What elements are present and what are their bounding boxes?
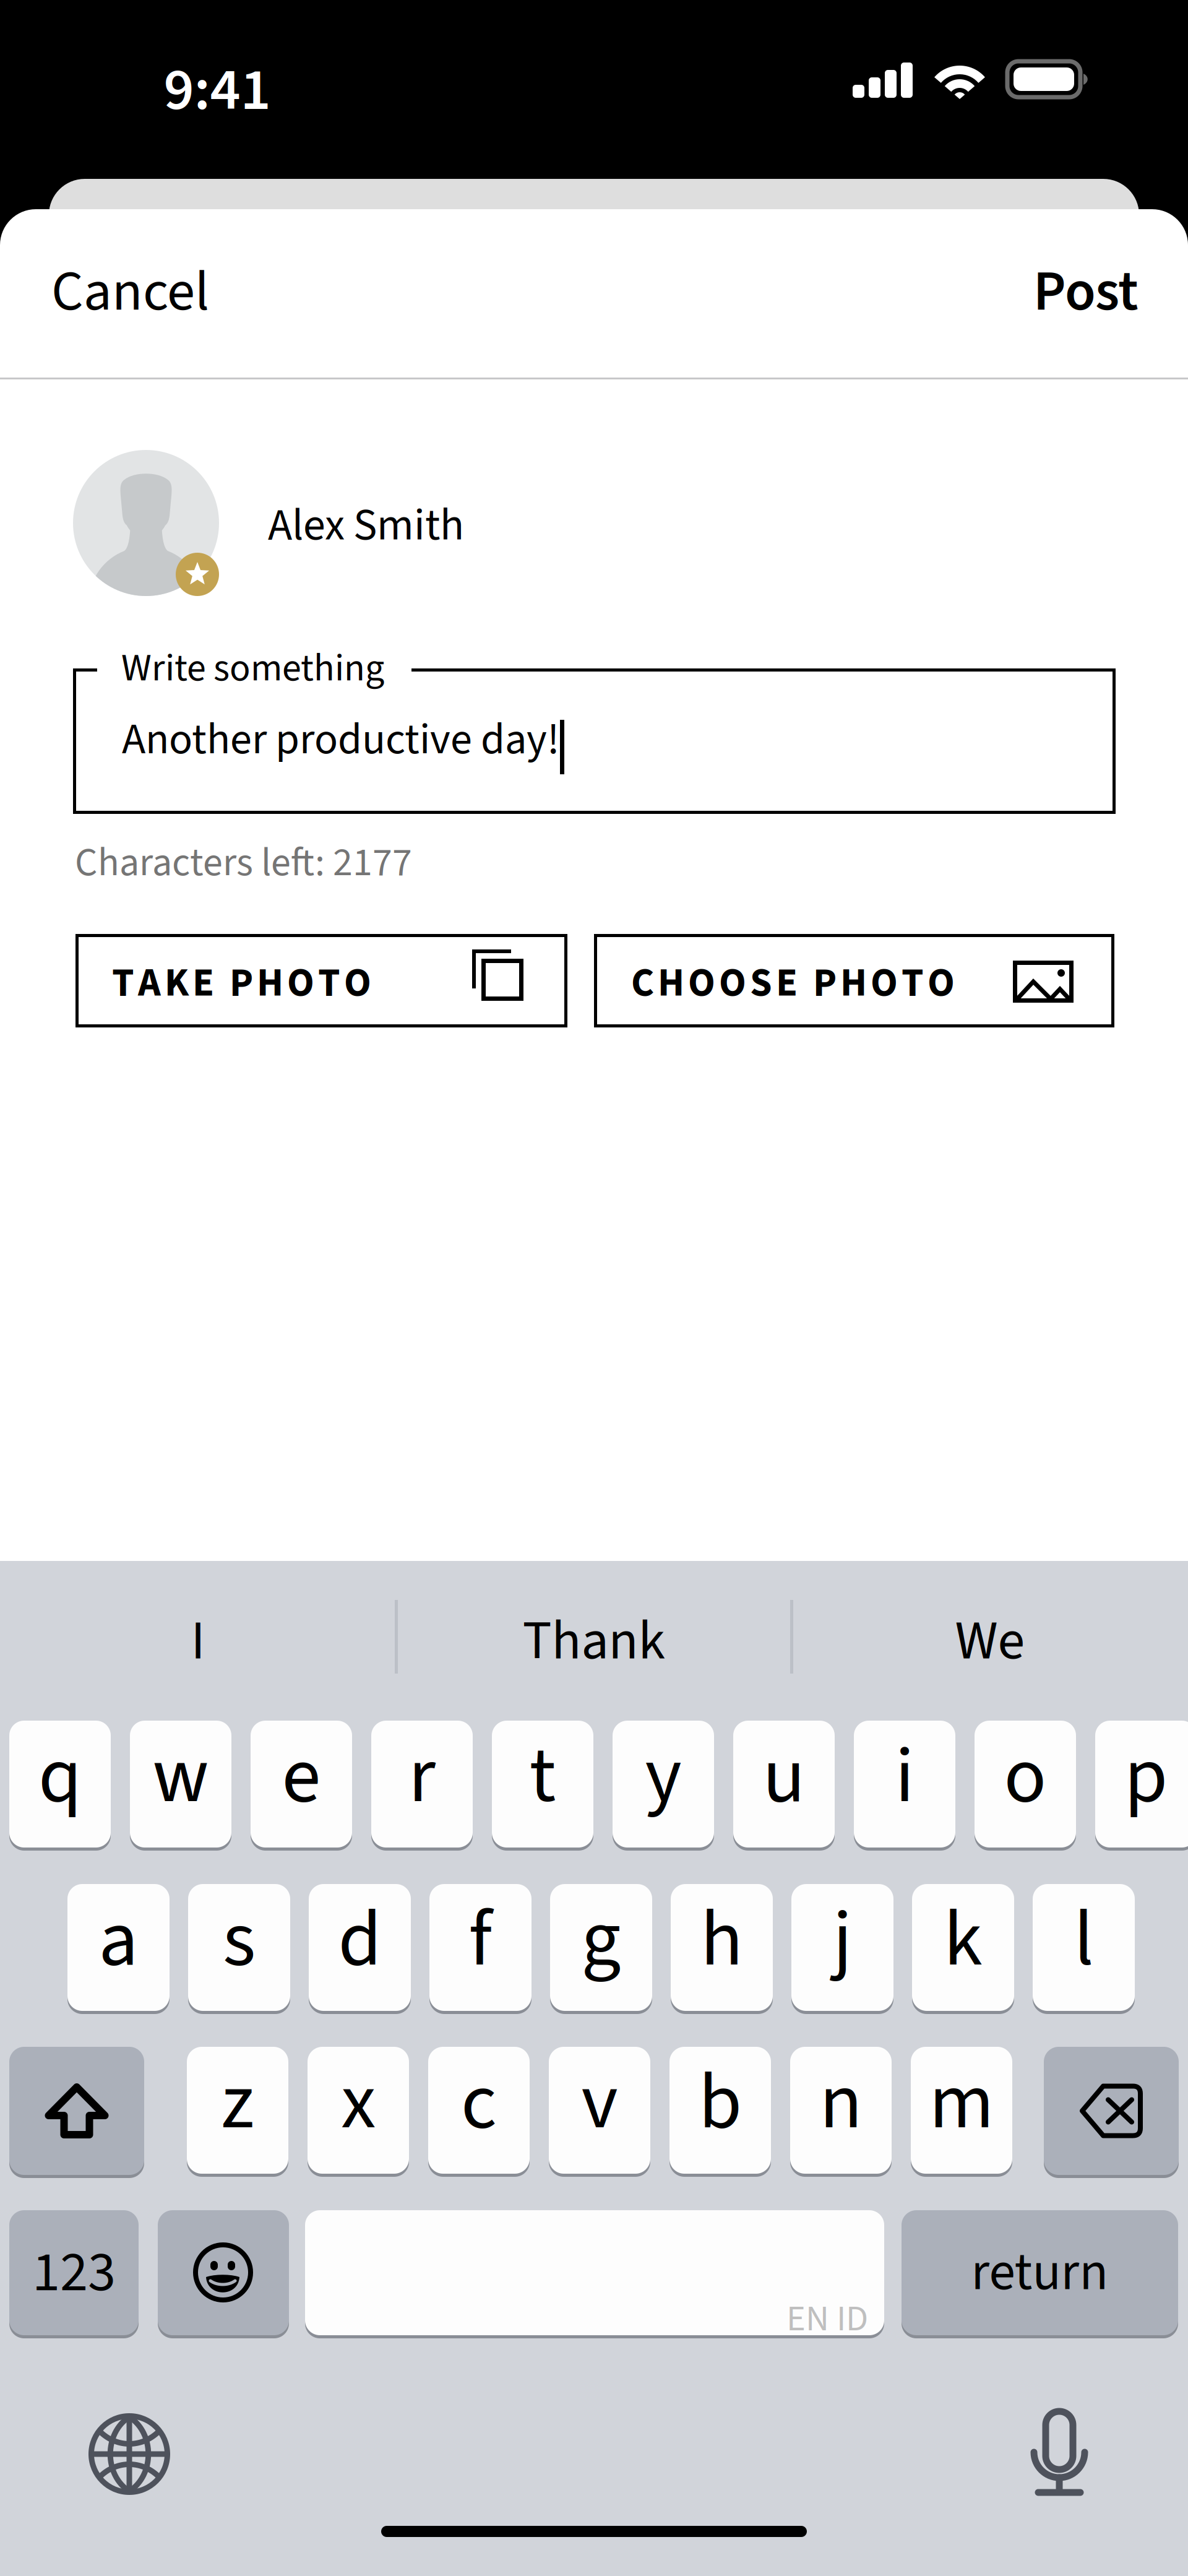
button[interactable]: return bbox=[902, 2210, 1178, 2335]
staticText: Cancel bbox=[51, 252, 209, 332]
staticText: I bbox=[191, 1603, 205, 1680]
button[interactable]: n bbox=[790, 2047, 892, 2174]
button[interactable]: Post bbox=[953, 236, 1138, 348]
button[interactable]: p bbox=[1095, 1721, 1188, 1848]
staticText: 123 bbox=[32, 2233, 116, 2313]
button[interactable]: w bbox=[130, 1721, 231, 1848]
staticText: d bbox=[338, 1884, 381, 1996]
button[interactable]: u bbox=[733, 1721, 835, 1848]
button[interactable]: Dictate bbox=[1030, 2408, 1089, 2496]
staticText: Thank bbox=[523, 1603, 665, 1680]
button[interactable]: k bbox=[912, 1884, 1014, 2011]
staticText: C H O O S E P H O T O bbox=[631, 955, 955, 1011]
button[interactable]: Delete bbox=[1044, 2047, 1179, 2175]
staticText: Alex Smith bbox=[268, 494, 464, 557]
button[interactable]: d bbox=[309, 1884, 411, 2011]
staticText: e bbox=[282, 1721, 321, 1832]
staticText: i bbox=[895, 1721, 914, 1832]
button[interactable]: j bbox=[791, 1884, 893, 2011]
button[interactable]: Thank bbox=[396, 1583, 792, 1700]
staticText: We bbox=[955, 1603, 1025, 1680]
button[interactable]: b bbox=[669, 2047, 771, 2174]
button[interactable]: x bbox=[308, 2047, 409, 2174]
staticText: 9:41 bbox=[164, 48, 271, 133]
staticText: x bbox=[341, 2047, 376, 2159]
button[interactable]: i bbox=[854, 1721, 955, 1848]
button[interactable]: r bbox=[371, 1721, 473, 1848]
button[interactable]: s bbox=[188, 1884, 290, 2011]
button[interactable]: z bbox=[187, 2047, 288, 2174]
button[interactable]: y bbox=[613, 1721, 714, 1848]
button[interactable]: v bbox=[549, 2047, 650, 2174]
staticText: b bbox=[699, 2047, 742, 2159]
button[interactable]: a bbox=[67, 1884, 170, 2011]
button[interactable]: T A K E P H O T O bbox=[75, 934, 567, 1027]
staticText: j bbox=[833, 1884, 852, 1996]
button[interactable]: q bbox=[9, 1721, 111, 1848]
staticText: v bbox=[581, 2047, 618, 2159]
staticText: a bbox=[99, 1884, 138, 1996]
button[interactable]: h bbox=[671, 1884, 773, 2011]
staticText: p bbox=[1124, 1721, 1168, 1832]
button[interactable]: e bbox=[251, 1721, 352, 1848]
staticText: k bbox=[944, 1884, 983, 1996]
button[interactable]: m bbox=[911, 2047, 1012, 2174]
button[interactable]: 123 bbox=[9, 2210, 139, 2335]
staticText: r bbox=[408, 1721, 436, 1832]
button[interactable]: f bbox=[429, 1884, 532, 2011]
staticText: g bbox=[581, 1884, 621, 1996]
staticText: Post bbox=[1033, 252, 1138, 332]
button[interactable]: c bbox=[428, 2047, 530, 2174]
staticText: EN ID bbox=[786, 2293, 868, 2345]
staticText: t bbox=[529, 1721, 556, 1832]
staticText: w bbox=[153, 1721, 209, 1832]
staticText: T A K E P H O T O bbox=[112, 955, 371, 1011]
button[interactable]: g bbox=[550, 1884, 652, 2011]
button[interactable]: I bbox=[0, 1583, 396, 1700]
staticText: n bbox=[820, 2047, 862, 2159]
staticText: o bbox=[1004, 1721, 1047, 1832]
button[interactable]: o bbox=[975, 1721, 1076, 1848]
staticText: l bbox=[1074, 1884, 1094, 1996]
button[interactable]: We bbox=[792, 1583, 1188, 1700]
staticText: return bbox=[971, 2235, 1108, 2310]
button[interactable]: Space bbox=[305, 2210, 884, 2335]
staticText: c bbox=[461, 2047, 497, 2159]
staticText: q bbox=[38, 1721, 82, 1832]
staticText: u bbox=[763, 1721, 805, 1832]
staticText: Another productive day! bbox=[122, 709, 559, 771]
staticText: h bbox=[700, 1884, 743, 1996]
button[interactable]: t bbox=[492, 1721, 593, 1848]
button[interactable]: C H O O S E P H O T O bbox=[594, 934, 1114, 1027]
staticText: f bbox=[469, 1884, 492, 1996]
staticText: s bbox=[223, 1884, 256, 1996]
staticText: y bbox=[645, 1721, 682, 1832]
staticText: Write something bbox=[121, 641, 384, 696]
staticText: z bbox=[221, 2047, 254, 2159]
button[interactable]: Cancel bbox=[51, 236, 262, 348]
staticText: Characters left: 2177 bbox=[75, 835, 412, 891]
button[interactable]: Next keyboard bbox=[88, 2413, 170, 2495]
button[interactable]: l bbox=[1033, 1884, 1135, 2011]
button[interactable]: Shift bbox=[9, 2047, 144, 2175]
staticText: m bbox=[929, 2047, 994, 2159]
button[interactable]: Emoji bbox=[158, 2210, 289, 2335]
